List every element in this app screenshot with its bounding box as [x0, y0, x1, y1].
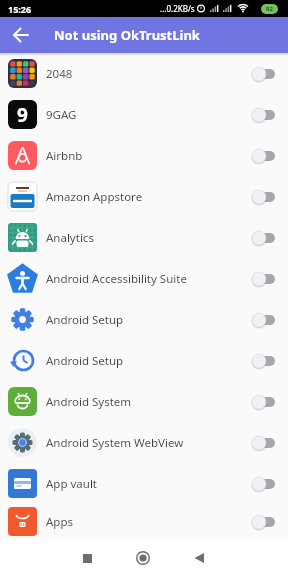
staticText: Android Setup [46, 353, 124, 369]
staticText: 9GAG [46, 107, 77, 123]
button[interactable]: 2048 [0, 53, 288, 94]
staticText: 9 [17, 102, 28, 128]
staticText: Analytics [46, 230, 94, 246]
button[interactable] [252, 513, 276, 531]
button[interactable]: Android Setup [0, 340, 288, 381]
button[interactable] [252, 188, 276, 206]
button[interactable] [252, 229, 276, 247]
staticText: ...0.2KB/s [160, 3, 195, 14]
staticText: Android Accessibility Suite [46, 271, 187, 287]
staticText: Amazon Appstore [46, 189, 143, 205]
button[interactable] [125, 540, 161, 576]
staticText: 92 [266, 5, 273, 13]
staticText: Not using OkTrustLink [54, 26, 200, 44]
button[interactable]: 9 [0, 94, 288, 135]
button[interactable]: Android System [0, 381, 288, 422]
button[interactable] [252, 106, 276, 124]
staticText: App vault [46, 476, 98, 492]
staticText: Android System WebView [46, 435, 184, 451]
button[interactable] [252, 311, 276, 329]
button[interactable] [252, 475, 276, 493]
staticText: Android System [46, 394, 132, 410]
button[interactable] [252, 65, 276, 83]
button[interactable]: Android Setup [0, 299, 288, 340]
staticText: Airbnb [46, 148, 83, 164]
button[interactable] [69, 540, 105, 576]
staticText: 15:26 [8, 3, 32, 15]
button[interactable] [252, 270, 276, 288]
staticText: Apps [46, 514, 74, 530]
button[interactable]: Android System WebView [0, 422, 288, 463]
button[interactable] [252, 393, 276, 411]
button[interactable]: Android Accessibility Suite [0, 258, 288, 299]
button[interactable] [252, 352, 276, 370]
button[interactable] [252, 147, 276, 165]
button[interactable] [0, 17, 42, 53]
button[interactable]: Airbnb [0, 135, 288, 176]
staticText: 2048 [46, 66, 73, 82]
button[interactable]: Apps [0, 504, 288, 539]
button[interactable] [181, 540, 217, 576]
staticText: Android Setup [46, 312, 124, 328]
button[interactable] [252, 434, 276, 452]
button[interactable]: App vault [0, 463, 288, 504]
button[interactable]: Analytics [0, 217, 288, 258]
button[interactable]: Amazon Appstore [0, 176, 288, 217]
